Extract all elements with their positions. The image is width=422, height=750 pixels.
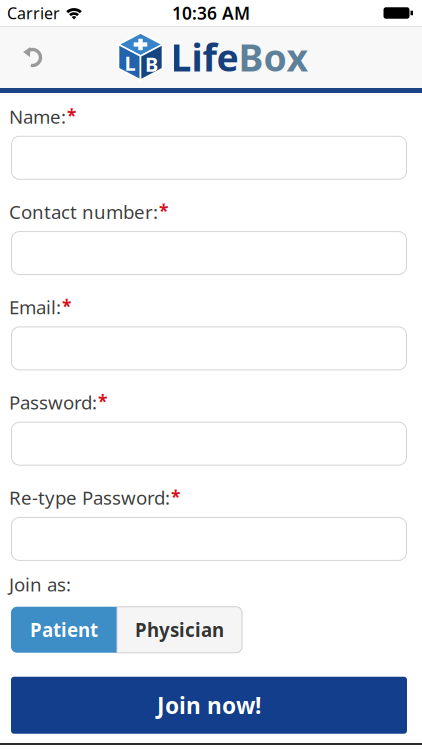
button[interactable]: Password text field bbox=[11, 422, 407, 466]
staticText: Carrier bbox=[7, 2, 60, 24]
button[interactable]: Contact number text field bbox=[11, 231, 407, 275]
staticText: Email: bbox=[9, 295, 61, 319]
staticText: 10:36 AM bbox=[172, 1, 250, 24]
staticText: Physician bbox=[135, 617, 224, 642]
staticText: L bbox=[124, 50, 135, 76]
button[interactable]: Email text field bbox=[11, 326, 407, 370]
staticText: Join as: bbox=[9, 572, 71, 597]
button[interactable]: Patient bbox=[11, 607, 117, 653]
staticText: * bbox=[159, 199, 168, 222]
staticText: Password: bbox=[9, 390, 97, 415]
button[interactable]: Re-type Password text field bbox=[11, 517, 407, 561]
staticText: Join now! bbox=[157, 690, 261, 720]
staticText: B bbox=[145, 51, 158, 77]
button[interactable]: Join now! bbox=[11, 677, 407, 734]
staticText: Life bbox=[170, 32, 238, 82]
staticText: Box bbox=[238, 32, 308, 82]
staticText: * bbox=[98, 390, 107, 413]
staticText: Name: bbox=[9, 104, 66, 129]
staticText: * bbox=[62, 295, 71, 318]
staticText: Re-type Password: bbox=[9, 485, 170, 510]
button[interactable]: Physician bbox=[117, 607, 242, 653]
staticText: Contact number: bbox=[9, 199, 158, 224]
staticText: * bbox=[67, 104, 76, 127]
button[interactable]: Name text field bbox=[11, 136, 407, 180]
staticText: * bbox=[171, 485, 180, 508]
staticText: Patient bbox=[30, 617, 98, 642]
button[interactable]: Back bbox=[0, 43, 52, 70]
